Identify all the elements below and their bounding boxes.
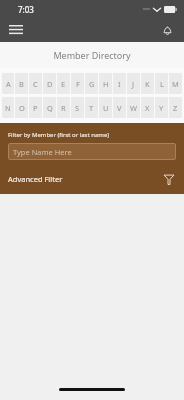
staticText: K xyxy=(145,79,150,89)
staticText: H xyxy=(103,79,109,89)
button[interactable]: P xyxy=(29,97,42,118)
button[interactable]: E xyxy=(57,73,70,94)
staticText: N xyxy=(5,103,11,113)
button[interactable]: D xyxy=(43,73,56,94)
staticText: O xyxy=(19,103,25,113)
staticText: L xyxy=(160,79,164,89)
button[interactable]: O xyxy=(15,97,28,118)
button[interactable]: Notifications xyxy=(155,18,179,42)
staticText: Y xyxy=(159,103,164,113)
staticText: G xyxy=(89,79,95,89)
staticText: J xyxy=(132,79,135,89)
button[interactable]: J xyxy=(127,73,140,94)
staticText: W xyxy=(130,103,137,113)
staticText: T xyxy=(89,103,94,113)
staticText: D xyxy=(47,79,53,89)
staticText: P xyxy=(33,103,38,113)
button[interactable]: G xyxy=(85,73,98,94)
button[interactable]: R xyxy=(57,97,70,118)
staticText: I xyxy=(118,79,121,89)
staticText: M xyxy=(172,79,179,89)
button[interactable]: Z xyxy=(169,97,182,118)
button[interactable]: L xyxy=(155,73,168,94)
button[interactable]: V xyxy=(113,97,126,118)
button[interactable]: M xyxy=(169,73,182,94)
staticText: Filter by Member (first or last name) xyxy=(8,131,110,139)
button[interactable]: A xyxy=(2,73,14,94)
button[interactable]: I xyxy=(113,73,126,94)
button[interactable]: C xyxy=(29,73,42,94)
button[interactable]: W xyxy=(127,97,140,118)
staticText: R xyxy=(61,103,66,113)
staticText: Member Directory xyxy=(53,49,131,61)
other: Advanced Filter xyxy=(162,172,176,186)
staticText: Z xyxy=(173,103,178,113)
button[interactable]: F xyxy=(71,73,84,94)
staticText: 7:03 xyxy=(18,4,34,15)
button[interactable]: Q xyxy=(43,97,56,118)
button[interactable]: T xyxy=(85,97,98,118)
staticText: Type Name Here xyxy=(13,147,72,157)
button[interactable]: N xyxy=(2,97,14,118)
button[interactable]: S xyxy=(71,97,84,118)
staticText: E xyxy=(61,79,66,89)
button[interactable]: Advanced Filter xyxy=(8,172,176,186)
button[interactable]: Y xyxy=(155,97,168,118)
button[interactable]: H xyxy=(99,73,112,94)
button[interactable]: U xyxy=(99,97,112,118)
staticText: Q xyxy=(47,103,53,113)
staticText: S xyxy=(75,103,80,113)
button[interactable]: Type Name Here xyxy=(8,143,176,160)
staticText: U xyxy=(103,103,109,113)
staticText: X xyxy=(145,103,150,113)
staticText: Advanced Filter xyxy=(8,174,63,184)
button[interactable]: B xyxy=(15,73,28,94)
button[interactable]: Menu xyxy=(4,18,28,42)
staticText: A xyxy=(6,79,11,89)
button[interactable]: X xyxy=(141,97,154,118)
staticText: F xyxy=(76,79,80,89)
button[interactable]: K xyxy=(141,73,154,94)
staticText: V xyxy=(117,103,122,113)
staticText: C xyxy=(33,79,38,89)
staticText: B xyxy=(19,79,24,89)
